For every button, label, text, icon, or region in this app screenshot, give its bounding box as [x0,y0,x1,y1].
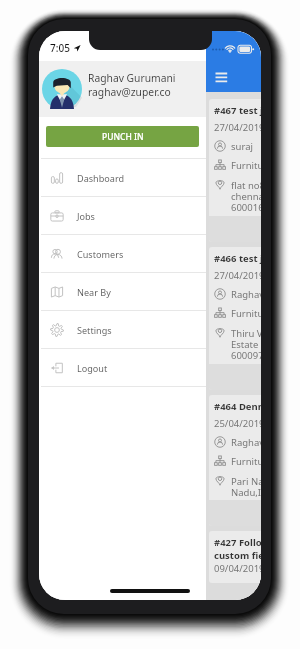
staticText: Customers [77,248,124,260]
button[interactable]: Customers [39,235,206,272]
staticText: Dashboard [77,172,125,184]
staticText: 600016 [231,201,261,214]
staticText: raghav@zuper.co [88,85,171,99]
button[interactable]: #464 Denmark [209,395,261,526]
staticText: Logout [77,362,108,374]
staticText: Raghav [231,288,261,301]
staticText: #467 test job ed [214,104,261,117]
button[interactable]: #466 test job [209,247,261,390]
staticText: custom field [214,549,261,562]
staticText: #466 test job [214,252,261,265]
staticText: Estate ,Sl [231,338,261,351]
staticText: 25/04/2019 [214,417,261,430]
staticText: 27/04/2019 1 [214,269,261,282]
staticText: 27/04/2019 1 [214,121,261,134]
staticText: Pari Naga [231,475,261,488]
button[interactable]: Settings [39,311,206,348]
button[interactable]: Jobs [39,197,206,234]
staticText: 600097 [231,349,261,362]
staticText: Furniture A [231,307,261,320]
staticText: Raghav [231,436,261,449]
staticText: Furniture A [231,159,261,172]
staticText: Raghav Gurumani [88,71,176,85]
button[interactable]: Near By [39,273,206,310]
staticText: 09/04/2019 [214,562,261,575]
staticText: #427 Follow up [214,536,261,549]
staticText: PUNCH IN [102,131,144,143]
staticText: Settings [77,324,112,336]
staticText: #464 Denmark [214,400,261,413]
staticText: Jobs [77,210,95,222]
button[interactable]: #467 test job ed [209,99,261,242]
staticText: Near By [77,286,111,298]
button[interactable]: #427 Follow up [209,531,261,583]
staticText: 7:05 [50,41,70,55]
staticText: flat no8 [231,179,261,192]
staticText: Thiru Vi Ka [231,327,261,340]
button[interactable]: PUNCH IN [46,126,199,147]
staticText: Furniture A [231,455,261,468]
staticText: suraj [231,140,253,153]
button[interactable]: Dashboard [39,159,206,196]
staticText: chennai , [231,190,261,203]
button[interactable]: Open navigation menu [209,67,233,88]
button[interactable]: Logout [39,349,206,386]
staticText: Nadu,Indi [231,486,261,499]
